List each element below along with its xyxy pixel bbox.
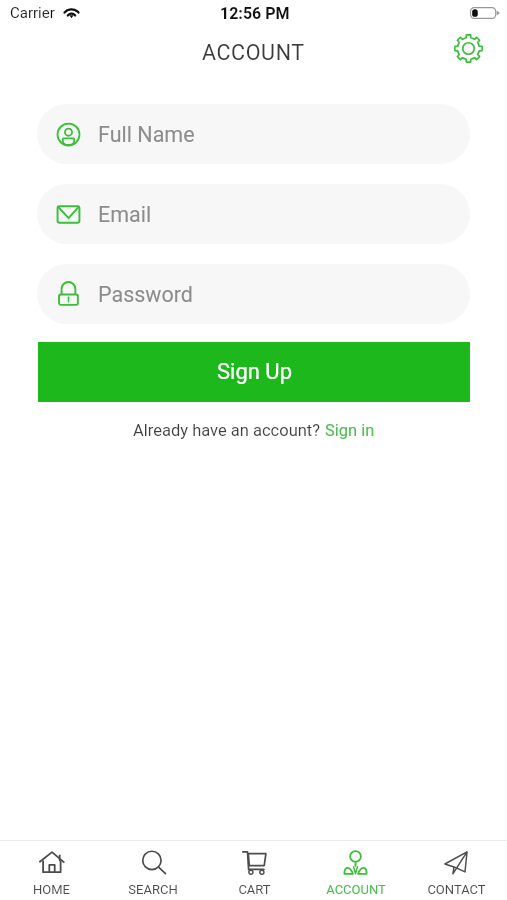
staticText: Sign in: [325, 421, 375, 440]
staticText: HOME: [33, 882, 70, 897]
button[interactable]: Sign in: [325, 421, 375, 440]
staticText: Email: [98, 202, 152, 227]
button[interactable]: CONTACT: [406, 841, 507, 900]
staticText: Full Name: [98, 122, 195, 147]
staticText: Already have an account?: [133, 421, 325, 440]
staticText: 12:56 PM: [220, 4, 290, 23]
staticText: Password: [98, 282, 193, 307]
staticText: ACCOUNT: [202, 40, 305, 65]
button[interactable]: Email: [37, 184, 470, 244]
button[interactable]: Sign Up: [38, 342, 470, 402]
button[interactable]: ACCOUNT: [305, 841, 406, 900]
button[interactable]: Password: [37, 264, 470, 324]
staticText: ACCOUNT: [326, 882, 386, 897]
staticText: SEARCH: [128, 882, 178, 897]
button[interactable]: CART: [204, 841, 305, 900]
button[interactable]: SEARCH: [102, 841, 204, 900]
button[interactable]: HOME: [0, 841, 102, 900]
staticText: CONTACT: [427, 882, 486, 897]
staticText: Sign Up: [217, 359, 292, 385]
staticText: Carrier: [10, 4, 55, 22]
staticText: CART: [238, 882, 271, 897]
button[interactable]: Full Name: [37, 104, 470, 164]
button[interactable]: Settings: [449, 29, 487, 67]
